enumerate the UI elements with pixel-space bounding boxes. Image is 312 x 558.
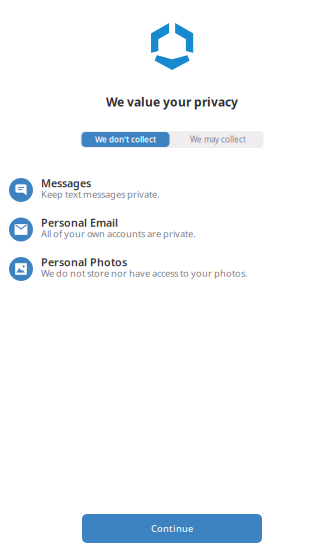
staticText: We value your privacy: [106, 94, 238, 110]
staticText: We may collect: [190, 134, 246, 145]
staticText: Personal Email: [41, 215, 118, 230]
staticText: Messages: [41, 176, 91, 190]
staticText: All of your own accounts are private.: [41, 227, 196, 240]
staticText: Personal Photos: [41, 255, 127, 269]
button[interactable]: Continue: [82, 514, 262, 543]
button[interactable]: We may collect: [172, 131, 263, 148]
staticText: We do not store nor have access to your …: [41, 267, 248, 279]
button[interactable]: We don't collect: [81, 132, 169, 147]
staticText: Keep text messages private.: [41, 188, 160, 200]
staticText: Continue: [151, 522, 193, 535]
staticText: We don't collect: [95, 134, 156, 145]
